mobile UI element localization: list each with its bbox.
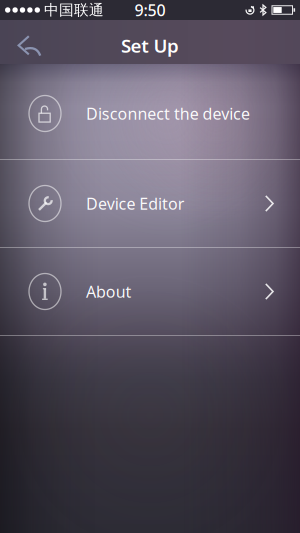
- staticText: About: [86, 281, 132, 302]
- button[interactable]: Back: [0, 27, 42, 57]
- staticText: 中国联通: [44, 1, 104, 19]
- button[interactable]: About: [0, 248, 300, 335]
- staticText: 9:50: [134, 0, 165, 21]
- staticText: Disconnect the device: [86, 103, 250, 124]
- button[interactable]: Disconnect the device: [0, 64, 300, 159]
- staticText: Device Editor: [86, 193, 185, 214]
- staticText: Set Up: [121, 33, 179, 58]
- button[interactable]: Device Editor: [0, 160, 300, 247]
